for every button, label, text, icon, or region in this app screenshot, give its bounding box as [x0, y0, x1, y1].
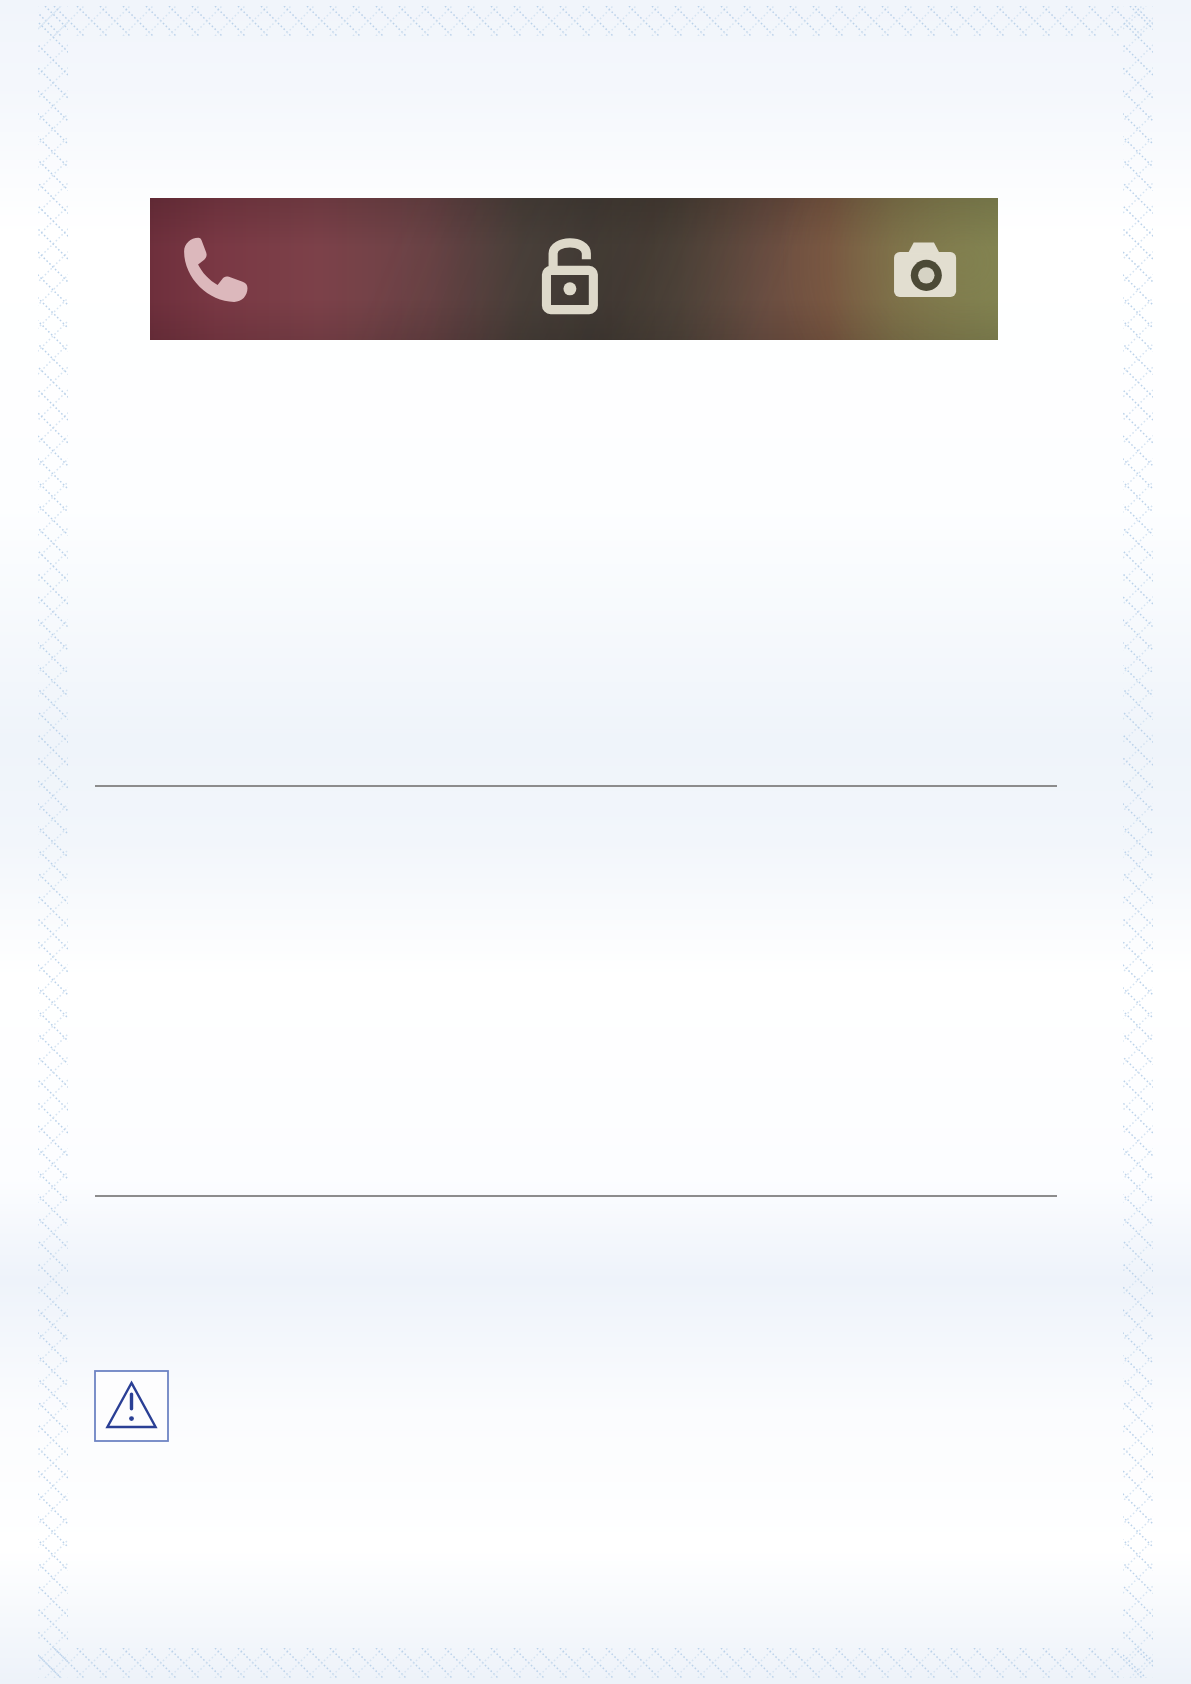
button[interactable]: Phone [178, 232, 274, 328]
button[interactable]: Camera [878, 232, 974, 328]
button[interactable]: Warning [95, 1371, 169, 1441]
button[interactable]: Unlock [526, 232, 622, 328]
